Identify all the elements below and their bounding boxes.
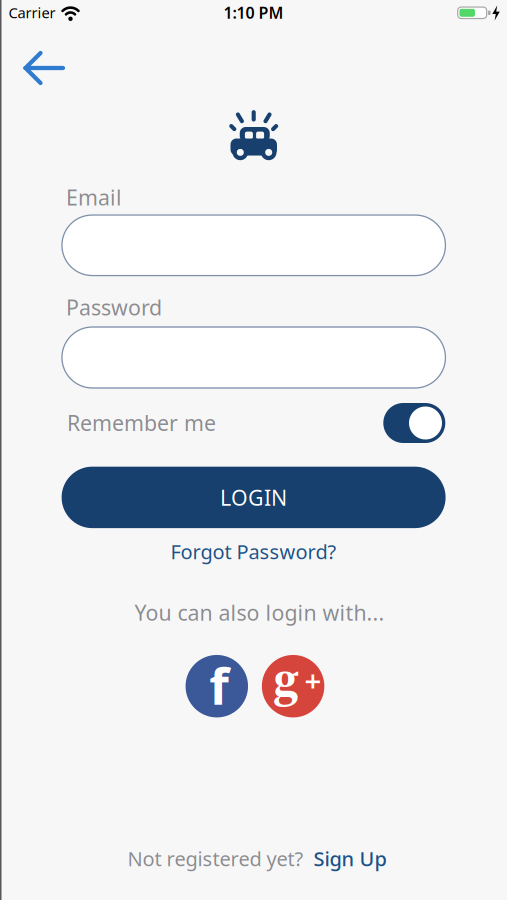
staticText: Sign Up [313,845,386,872]
button[interactable]: Sign Up [313,845,386,872]
staticText: Forgot Password? [170,538,336,565]
staticText: Remember me [67,408,216,437]
staticText: Carrier [8,3,55,22]
staticText: f [209,652,229,719]
staticText: Email [66,183,122,211]
button[interactable]: Email [62,215,445,276]
button[interactable]: Password [62,327,445,388]
staticText: g [274,645,299,711]
staticText: You can also login with... [134,598,384,627]
staticText: + [305,661,322,700]
button[interactable]: Login with Google [262,655,324,717]
button[interactable]: Forgot Password? [170,538,336,565]
button[interactable]: Back [17,46,71,90]
button[interactable]: Login with Facebook [186,655,248,717]
staticText: LOGIN [220,483,287,511]
staticText: Not registered yet? [127,845,303,872]
button[interactable]: LOGIN [62,467,446,528]
staticText: Password [66,293,162,321]
staticText: 1:10 PM [223,2,283,23]
button[interactable]: Remember me [383,403,445,443]
